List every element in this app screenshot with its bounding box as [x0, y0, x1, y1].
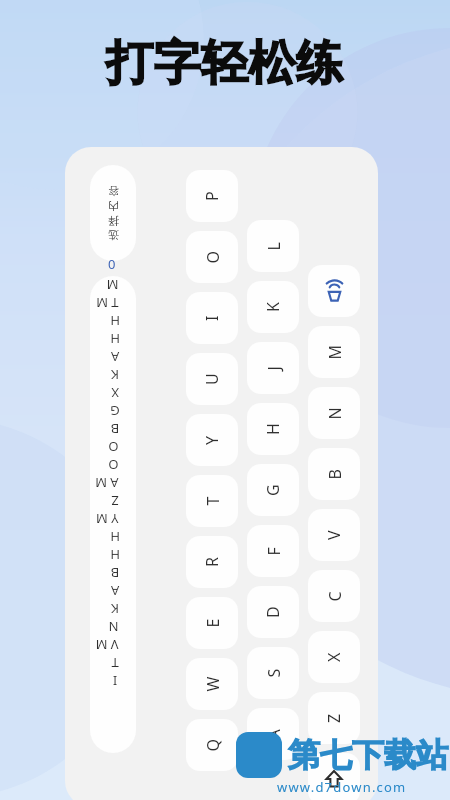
button[interactable]: K [247, 281, 299, 333]
staticText: J [262, 365, 284, 370]
button[interactable]: S [247, 647, 299, 699]
staticText: U [201, 373, 223, 385]
staticText: M [323, 344, 345, 359]
button[interactable]: L [247, 220, 299, 272]
button[interactable]: I [186, 292, 238, 344]
staticText: 选择内容 [107, 184, 120, 242]
staticText: P [201, 191, 223, 201]
staticText: Q [201, 738, 223, 751]
staticText: 打字轻松练 [106, 34, 344, 93]
button[interactable]: Z [308, 692, 360, 744]
staticText: I [201, 315, 223, 321]
button[interactable]: Shift [308, 753, 360, 800]
staticText: C [323, 590, 345, 601]
staticText: V [323, 530, 345, 540]
staticText: ITVMNKABHHYMZAMOOBGXKAHHTMM [107, 276, 120, 690]
staticText: www.d7down.com [277, 778, 407, 796]
button[interactable]: V [308, 509, 360, 561]
button[interactable]: U [186, 353, 238, 405]
button[interactable]: Y [186, 414, 238, 466]
staticText: D [262, 606, 284, 618]
button[interactable]: J [247, 342, 299, 394]
staticText: 0 [108, 255, 116, 273]
button[interactable]: C [308, 570, 360, 622]
button[interactable]: N [308, 387, 360, 439]
staticText: K [262, 302, 284, 312]
staticText: S [262, 668, 284, 677]
staticText: N [323, 406, 345, 419]
button[interactable]: Voice input [308, 265, 360, 317]
button[interactable]: 选择内容 [90, 165, 136, 261]
button[interactable]: E [186, 597, 238, 649]
staticText: X [323, 652, 345, 662]
button[interactable]: X [308, 631, 360, 683]
button[interactable]: G [247, 464, 299, 516]
button[interactable]: F [247, 525, 299, 577]
staticText: O [201, 250, 223, 263]
staticText: 第七下载站 [288, 735, 448, 775]
staticText: A [262, 728, 284, 739]
button[interactable]: H [247, 403, 299, 455]
button[interactable]: M [308, 326, 360, 378]
button[interactable]: B [308, 448, 360, 500]
staticText: G [262, 484, 284, 496]
staticText: E [201, 618, 223, 627]
staticText: B [323, 468, 345, 479]
button[interactable]: R [186, 536, 238, 588]
staticText: F [262, 546, 284, 555]
button[interactable]: W [186, 658, 238, 710]
button[interactable]: D [247, 586, 299, 638]
staticText: L [262, 241, 284, 250]
button[interactable]: Q [186, 719, 238, 771]
staticText: H [262, 423, 284, 435]
button[interactable]: O [186, 231, 238, 283]
button[interactable]: P [186, 170, 238, 222]
button[interactable]: T [186, 475, 238, 527]
button[interactable]: A [247, 708, 299, 760]
staticText: T [201, 496, 223, 505]
staticText: Z [323, 713, 345, 723]
button[interactable]: ITVMNKABHHYMZAMOOBGXKAHHTMM [90, 276, 136, 753]
staticText: Y [201, 435, 223, 445]
staticText: R [201, 557, 223, 567]
staticText: W [201, 676, 223, 691]
